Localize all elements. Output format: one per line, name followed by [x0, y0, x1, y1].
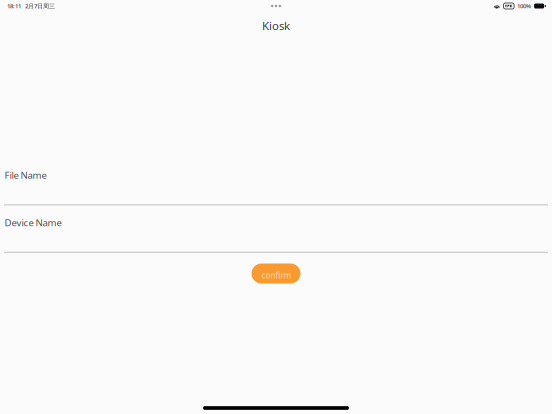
staticText: Device Name	[4, 216, 61, 229]
staticText: Kiosk	[262, 18, 290, 33]
button[interactable]: Device Name	[0, 205, 552, 253]
staticText: 2月7日周三	[25, 2, 55, 10]
button[interactable]: Multitasking options	[253, 0, 299, 11]
staticText: 18:11	[7, 2, 21, 10]
staticText: 100%	[517, 2, 531, 10]
button[interactable]: confirm	[251, 263, 300, 283]
button[interactable]: File Name	[0, 158, 552, 205]
staticText: confirm	[261, 270, 290, 281]
staticText: File Name	[4, 168, 46, 182]
